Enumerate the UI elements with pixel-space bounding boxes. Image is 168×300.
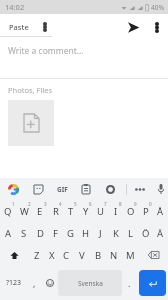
staticText: Photos, Files <box>8 85 53 95</box>
staticText: S <box>21 227 27 240</box>
staticText: M <box>126 249 135 262</box>
staticText: 8 <box>119 201 122 207</box>
button[interactable]: , <box>27 266 41 300</box>
button[interactable]: Ä <box>153 222 168 244</box>
staticText: 1 <box>12 201 15 207</box>
staticText: 4 <box>59 201 62 207</box>
staticText: N <box>110 249 118 262</box>
staticText: T <box>68 205 74 218</box>
staticText: 7 <box>104 201 107 207</box>
staticText: 6 <box>89 201 92 207</box>
staticText: Write a comment... <box>8 45 84 57</box>
staticText: Paste <box>9 22 29 32</box>
button[interactable]: Keyboard settings <box>98 178 122 200</box>
button[interactable]: I <box>108 200 123 222</box>
staticText: C <box>63 249 70 262</box>
staticText: Q <box>4 205 12 218</box>
button[interactable]: P <box>138 200 153 222</box>
button[interactable]: Paste options <box>38 16 52 37</box>
staticText: 14:02 <box>5 2 25 12</box>
staticText: GIF <box>57 185 68 194</box>
staticText: D <box>37 227 44 240</box>
button[interactable]: E <box>32 200 48 222</box>
button[interactable]: Enter <box>139 270 166 296</box>
button[interactable]: R <box>48 200 63 222</box>
button[interactable]: Write a comment... <box>0 40 168 78</box>
button[interactable]: More tools <box>127 178 153 200</box>
button[interactable]: . <box>122 266 137 300</box>
button[interactable]: Voice input <box>153 178 168 200</box>
staticText: 40% <box>151 3 164 12</box>
staticText: X <box>49 249 55 262</box>
button[interactable]: M <box>122 244 138 266</box>
button[interactable]: G <box>63 222 78 244</box>
button[interactable]: Å <box>153 200 168 222</box>
staticText: G <box>67 227 74 240</box>
staticText: Ä <box>157 227 164 240</box>
button[interactable]: C <box>59 244 74 266</box>
staticText: I <box>114 205 118 218</box>
staticText: 9 <box>134 201 137 207</box>
staticText: U <box>97 205 104 218</box>
button[interactable]: Ö <box>138 222 153 244</box>
button[interactable]: A <box>0 222 16 244</box>
staticText: Z <box>34 249 40 262</box>
staticText: W <box>20 205 29 218</box>
staticText: 2 <box>28 201 31 207</box>
button[interactable]: U <box>93 200 108 222</box>
staticText: A <box>5 227 12 240</box>
staticText: ?123 <box>6 278 22 288</box>
button[interactable]: N <box>106 244 122 266</box>
button[interactable]: Clipboard <box>74 178 98 200</box>
button[interactable]: X <box>44 244 59 266</box>
button[interactable]: S <box>16 222 32 244</box>
button[interactable]: L <box>123 222 138 244</box>
staticText: O <box>127 205 135 218</box>
staticText: Svenska <box>78 279 103 288</box>
staticText: F <box>53 227 58 240</box>
button[interactable]: W <box>16 200 32 222</box>
button[interactable]: H <box>78 222 93 244</box>
button[interactable]: GIF <box>50 178 74 200</box>
staticText: E <box>37 205 43 218</box>
button[interactable]: Backspace <box>138 244 168 266</box>
staticText: K <box>113 227 119 240</box>
button[interactable]: V <box>74 244 90 266</box>
staticText: . <box>128 277 131 289</box>
staticText: 5 <box>74 201 77 207</box>
button[interactable]: Google search <box>0 178 26 200</box>
staticText: Ö <box>142 227 150 240</box>
staticText: Y <box>83 205 89 218</box>
button[interactable]: Add photo or file <box>8 100 54 146</box>
button[interactable]: J <box>93 222 108 244</box>
button[interactable]: Z <box>29 244 44 266</box>
button[interactable]: Stickers <box>26 178 50 200</box>
staticText: 3 <box>44 201 47 207</box>
staticText: , <box>33 277 36 289</box>
button[interactable]: Emoji <box>41 266 58 300</box>
staticText: L <box>128 227 133 240</box>
staticText: B <box>95 249 102 262</box>
button[interactable]: More options <box>146 16 168 38</box>
button[interactable]: Paste <box>0 16 52 37</box>
staticText: J <box>99 227 102 240</box>
button[interactable]: Send <box>120 14 146 40</box>
button[interactable]: Y <box>78 200 93 222</box>
button[interactable]: Q <box>0 200 16 222</box>
staticText: Å <box>157 205 164 218</box>
button[interactable]: F <box>48 222 63 244</box>
staticText: H <box>82 227 90 240</box>
button[interactable]: B <box>90 244 106 266</box>
button[interactable]: O <box>123 200 138 222</box>
button[interactable]: Shift <box>0 244 29 266</box>
button[interactable]: ?123 <box>0 266 27 300</box>
button[interactable]: K <box>108 222 123 244</box>
staticText: 0 <box>149 201 152 207</box>
button[interactable]: T <box>63 200 78 222</box>
button[interactable]: Svenska <box>58 270 122 296</box>
staticText: P <box>143 205 149 218</box>
staticText: R <box>53 205 59 218</box>
button[interactable]: D <box>32 222 48 244</box>
staticText: V <box>79 249 85 262</box>
